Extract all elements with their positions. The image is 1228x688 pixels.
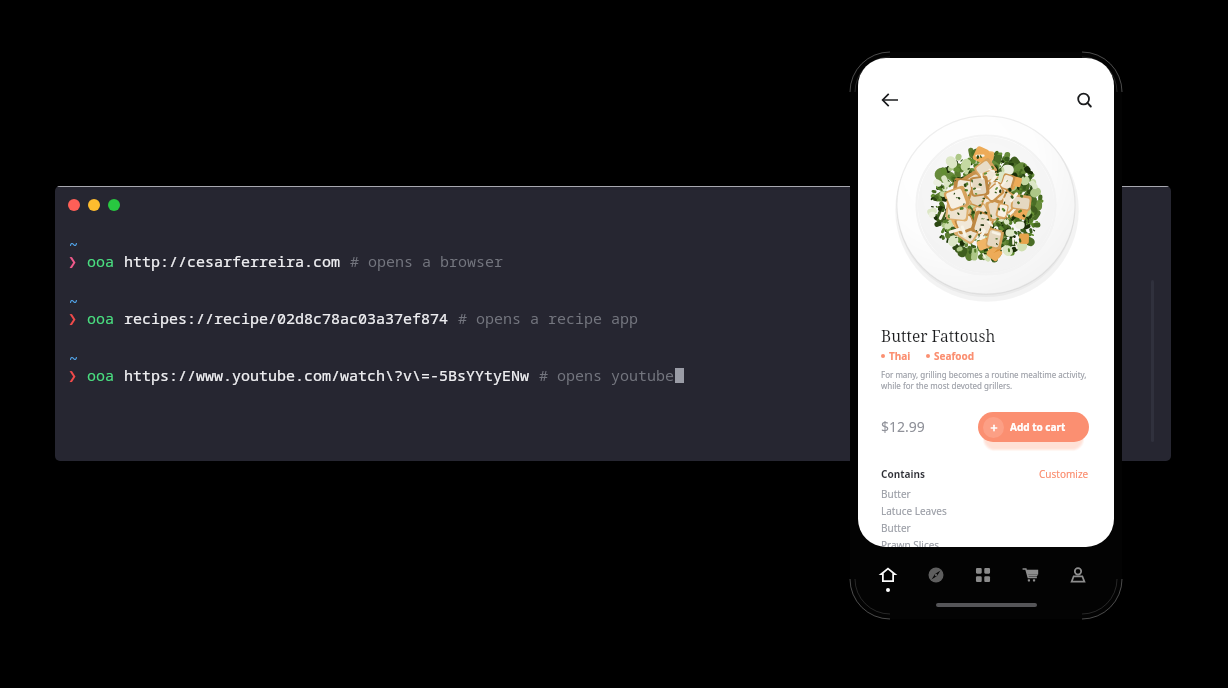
staticText: ❯ [68, 365, 87, 385]
button[interactable]: Search [1065, 84, 1097, 116]
button[interactable]: Categories [968, 560, 998, 596]
staticText: Contains [881, 467, 926, 481]
staticText: Customize [1039, 467, 1089, 481]
button[interactable]: Add to cart [978, 412, 1089, 442]
staticText: recipes://recipe/02d8c78ac03a37ef874 [124, 308, 458, 328]
staticText: ~ [69, 291, 79, 311]
staticText: Butter [881, 521, 911, 535]
staticText: ooa [87, 365, 124, 385]
button[interactable]: Explore [921, 560, 951, 596]
staticText: # opens a browser [350, 251, 504, 271]
staticText: Seafood [934, 349, 975, 363]
staticText: # opens youtube [539, 365, 675, 385]
staticText: ~ [69, 348, 79, 368]
staticText: http://cesarferreira.com [124, 251, 350, 271]
staticText: ❯ [68, 251, 87, 271]
button[interactable]: Profile [1063, 560, 1093, 596]
staticText: Latuce Leaves [881, 504, 947, 518]
staticText: ooa [87, 251, 124, 271]
staticText: For many, grilling becomes a routine mea… [881, 369, 1087, 392]
staticText: ~ [69, 234, 79, 254]
staticText: https://www.youtube.com/watch\?v\=-5BsYY… [124, 365, 539, 385]
button[interactable]: Cart [1016, 560, 1046, 596]
staticText: Butter [881, 487, 911, 501]
button[interactable]: Customize [1039, 467, 1089, 481]
staticText: # opens a recipe app [458, 308, 639, 328]
button[interactable]: Back [874, 84, 906, 116]
staticText: ❯ [68, 308, 87, 328]
staticText: Thai [889, 349, 911, 363]
staticText: Butter Fattoush [881, 325, 996, 346]
staticText: $12.99 [881, 417, 925, 436]
button[interactable]: Home [873, 560, 903, 596]
staticText: Add to cart [1010, 420, 1066, 434]
staticText: Prawn Slices [881, 538, 940, 547]
staticText: ooa [87, 308, 124, 328]
